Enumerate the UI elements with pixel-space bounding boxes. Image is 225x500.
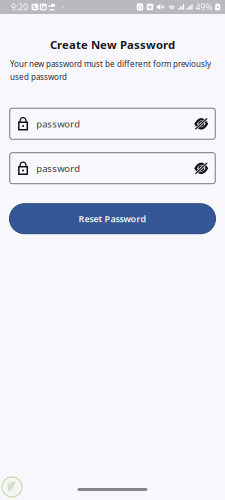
staticText: 49% (196, 1, 213, 13)
button[interactable]: Reset Password (9, 204, 215, 234)
button[interactable]: Show password (195, 163, 215, 174)
button[interactable]: Show password (195, 118, 215, 129)
staticText: Create New Password (50, 37, 175, 52)
staticText: Your new password must be different form… (10, 58, 211, 69)
staticText: 9:20 (11, 1, 28, 13)
staticText: Reset Password (78, 213, 146, 225)
staticText: password (36, 117, 80, 130)
staticText: used password (10, 71, 67, 82)
staticText: password (36, 162, 80, 175)
